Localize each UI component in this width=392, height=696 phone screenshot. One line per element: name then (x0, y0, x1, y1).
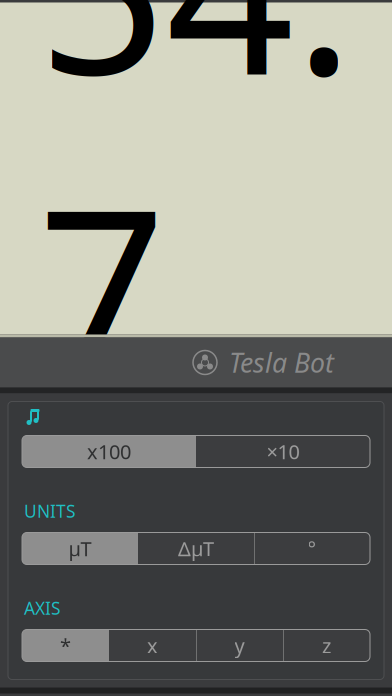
button[interactable]: ×10 (196, 435, 370, 467)
button[interactable]: * (22, 629, 109, 661)
button[interactable]: x100 (22, 435, 196, 467)
staticText: z (322, 632, 331, 659)
button[interactable]: x (109, 629, 196, 661)
staticText: µT (342, 450, 366, 476)
staticText: ° (307, 535, 316, 562)
button[interactable]: z (283, 629, 370, 661)
staticText: * (60, 632, 71, 659)
staticText: x (147, 632, 158, 659)
button[interactable]: y (196, 629, 283, 661)
button[interactable]: µT (22, 532, 138, 564)
staticText: UNITS (24, 499, 76, 522)
staticText: Tesla Bot (229, 345, 334, 380)
staticText: 54.7 (38, 0, 354, 434)
staticText: x100 (87, 438, 131, 465)
staticText: ΔµT (178, 535, 214, 562)
staticText: ×10 (266, 438, 299, 465)
button[interactable]: ° (254, 532, 370, 564)
staticText: y (234, 632, 244, 659)
button[interactable]: ΔµT (138, 532, 254, 564)
staticText: AXIS (24, 596, 61, 619)
staticText: µT (68, 535, 91, 562)
